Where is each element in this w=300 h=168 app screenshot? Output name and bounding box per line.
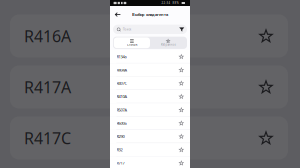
- staticText: R410A: [116, 94, 127, 99]
- button[interactable]: R416A: [10, 14, 288, 57]
- button[interactable]: Filter: [178, 26, 185, 33]
- staticText: R416A: [24, 25, 71, 47]
- staticText: Список: [127, 43, 137, 46]
- staticText: Выбор хладагента: [132, 12, 168, 17]
- staticText: Поиск: [123, 28, 131, 31]
- button[interactable]: R507A: [110, 103, 190, 116]
- button[interactable]: R600a: [110, 116, 190, 130]
- button[interactable]: Избранное: [150, 37, 186, 48]
- button[interactable]: R404A: [110, 63, 190, 77]
- staticText: R600a: [116, 120, 126, 126]
- button[interactable]: Список: [114, 37, 150, 48]
- button[interactable]: R32: [110, 143, 190, 156]
- staticText: R404A: [116, 67, 127, 73]
- button[interactable]: R417A: [10, 65, 288, 108]
- staticText: R417C: [24, 127, 71, 149]
- staticText: R717: [116, 160, 124, 166]
- staticText: R407C: [116, 81, 127, 86]
- staticText: Избранное: [161, 43, 176, 46]
- button[interactable]: R717: [110, 156, 190, 168]
- staticText: 22:34 88%: [162, 1, 179, 5]
- staticText: R134a: [116, 54, 126, 59]
- button[interactable]: Back: [114, 11, 122, 19]
- button[interactable]: R134a: [110, 50, 190, 63]
- staticText: R417A: [24, 76, 71, 98]
- button[interactable]: Search: [113, 25, 187, 34]
- button[interactable]: R290: [110, 130, 190, 143]
- button[interactable]: R410A: [110, 90, 190, 103]
- staticText: R32: [116, 147, 122, 152]
- button[interactable]: R407C: [110, 77, 190, 90]
- staticText: R290: [116, 134, 124, 139]
- staticText: R507A: [116, 107, 127, 112]
- button[interactable]: R417C: [10, 116, 288, 159]
